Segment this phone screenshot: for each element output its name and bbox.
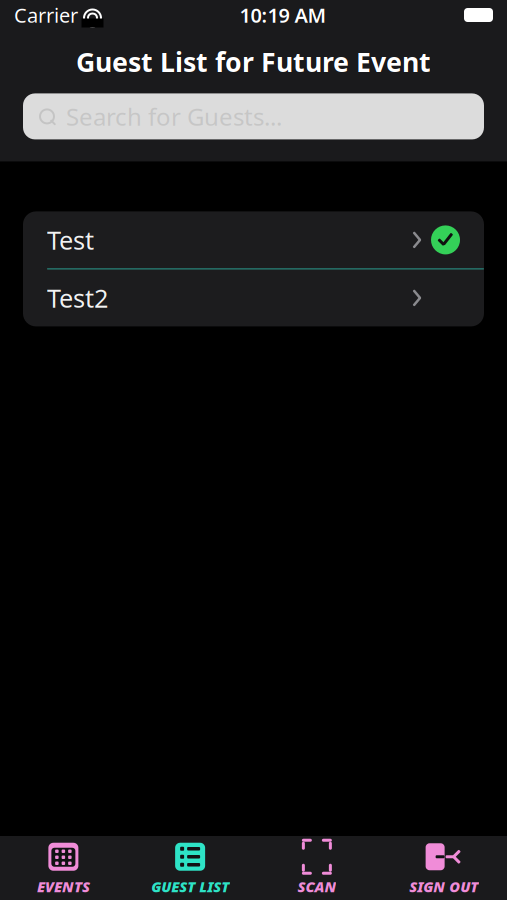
staticText: GUEST LIST	[151, 877, 229, 896]
button[interactable]: Test	[23, 211, 484, 268]
staticText: Search for Guests...	[66, 100, 282, 132]
button[interactable]: EVENTS	[0, 834, 127, 900]
button[interactable]: SCAN	[253, 834, 380, 900]
staticText: SCAN	[297, 877, 336, 896]
button[interactable]: GUEST LIST	[127, 834, 254, 900]
staticText: EVENTS	[37, 877, 90, 896]
staticText: 10:19 AM	[239, 2, 326, 28]
button[interactable]: SIGN OUT	[380, 834, 507, 900]
staticText: Test2	[47, 281, 108, 315]
staticText: SIGN OUT	[409, 877, 478, 896]
button[interactable]: Search for Guests...	[23, 93, 484, 139]
button[interactable]: Test2	[23, 269, 484, 326]
staticText: Carrier	[14, 2, 78, 28]
staticText: Guest List for Future Event	[76, 44, 431, 79]
staticText: Test	[47, 223, 94, 257]
